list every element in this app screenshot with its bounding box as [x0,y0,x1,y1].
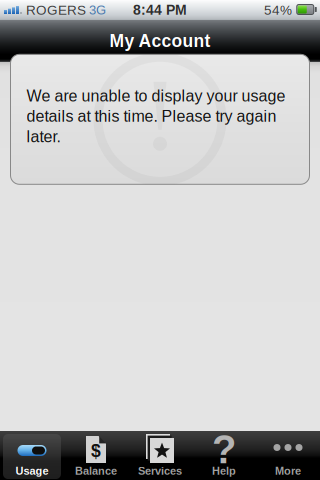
button[interactable]: More [256,431,320,480]
staticText: 54% [264,2,292,18]
button[interactable]: $ [64,431,128,480]
staticText: 8:44 PM [133,2,187,18]
staticText: Balance [75,465,117,477]
staticText: Services [138,465,182,477]
staticText: ? [212,427,236,472]
staticText: More [275,465,301,477]
staticText: Help [212,465,236,477]
button[interactable]: Services [128,431,192,480]
staticText: Usage [15,465,48,477]
staticText: ROGERS [26,2,86,18]
button[interactable]: ? [192,431,256,480]
staticText: $ [91,441,101,461]
button[interactable]: Usage [0,431,64,480]
staticText: My Account [109,31,210,51]
staticText: 3G [89,3,106,17]
staticText: We are unable to display your usage deta… [26,87,285,146]
